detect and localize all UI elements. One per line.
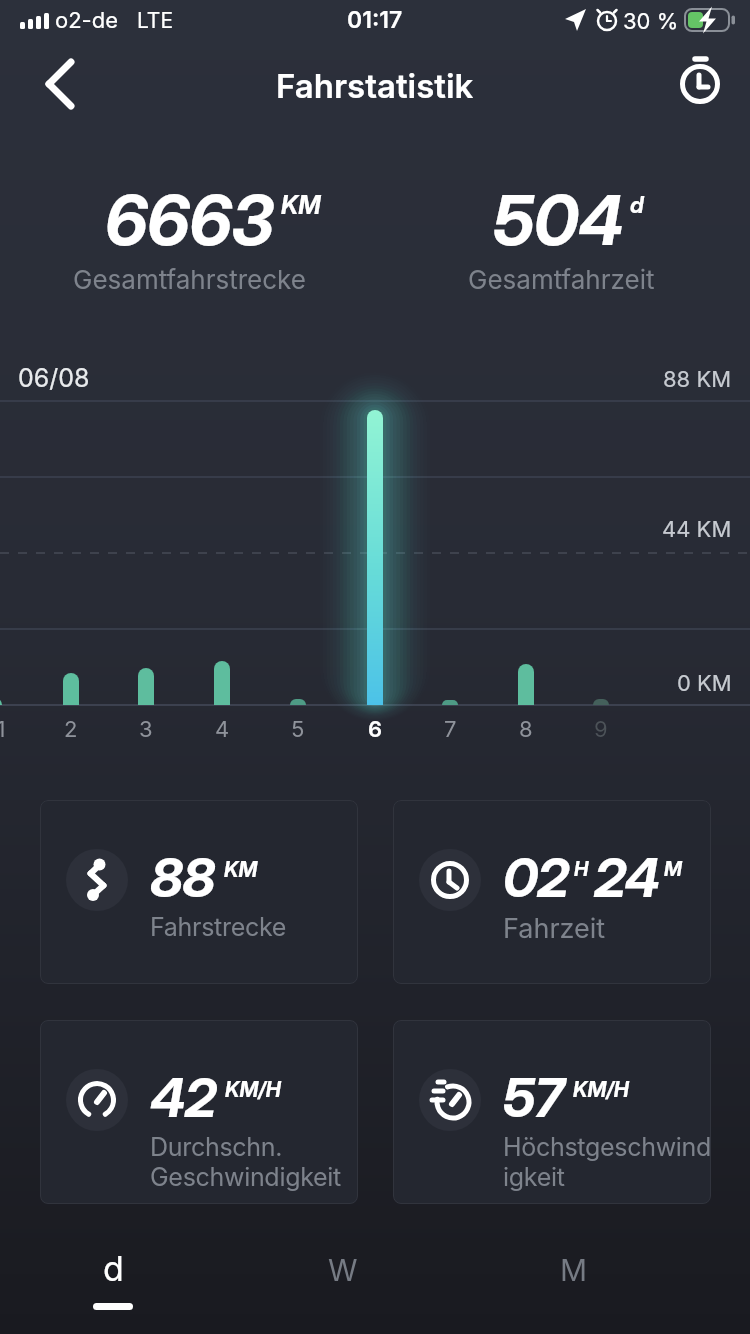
staticText: 24 [594, 845, 659, 910]
staticText: Fahrstatistik [276, 66, 474, 106]
staticText: 31 [0, 716, 6, 743]
staticText: Gesamtfahrstrecke [73, 264, 306, 295]
staticText: 44 KM [662, 516, 732, 543]
staticText: o2-de [55, 7, 119, 34]
staticText: Höchstgeschwind [503, 1132, 711, 1162]
staticText: 02 [503, 845, 569, 910]
button[interactable]: 88 [40, 800, 358, 984]
staticText: d [630, 191, 644, 219]
staticText: 06/08 [18, 363, 90, 393]
staticText: Fahrstrecke [150, 912, 287, 942]
staticText: KM [224, 857, 258, 882]
button[interactable]: W [315, 1252, 371, 1308]
staticText: 504 [493, 178, 624, 261]
staticText: KM/H [573, 1077, 629, 1102]
button[interactable] [668, 44, 732, 108]
staticText: 8 [519, 716, 533, 743]
button[interactable]: 42 [40, 1020, 358, 1204]
staticText: M [664, 857, 682, 881]
staticText: Geschwindigkeit [150, 1162, 341, 1192]
staticText: W [328, 1252, 358, 1288]
staticText: d [103, 1248, 124, 1289]
staticText: 3 [139, 716, 153, 743]
staticText: 0 KM [677, 670, 732, 697]
staticText: H [574, 857, 589, 881]
button[interactable]: d [85, 1248, 141, 1318]
staticText: 88 KM [663, 366, 732, 393]
staticText: Gesamtfahrzeit [468, 264, 655, 295]
button[interactable]: 02 [393, 800, 711, 984]
staticText: 7 [444, 716, 457, 743]
button[interactable]: 57 [393, 1020, 711, 1204]
staticText: 01:17 [347, 6, 403, 34]
staticText: igkeit [503, 1162, 565, 1192]
staticText: 5 [291, 716, 305, 743]
staticText: 4 [215, 716, 230, 743]
staticText: LTE [137, 8, 174, 33]
staticText: M [560, 1252, 588, 1288]
staticText: 57 [503, 1065, 564, 1130]
staticText: KM/H [225, 1077, 281, 1102]
staticText: 6663 [105, 178, 274, 261]
staticText: 6 [368, 716, 383, 743]
staticText: Durchschn. [150, 1132, 283, 1162]
staticText: 42 [150, 1065, 216, 1130]
staticText: KM [281, 190, 321, 220]
staticText: 88 [150, 845, 215, 910]
staticText: 2 [64, 716, 78, 743]
staticText: 30 % [623, 8, 679, 35]
staticText: 9 [594, 716, 608, 743]
button[interactable]: M [546, 1252, 602, 1308]
staticText: Fahrzeit [503, 912, 606, 945]
button[interactable] [28, 44, 92, 108]
